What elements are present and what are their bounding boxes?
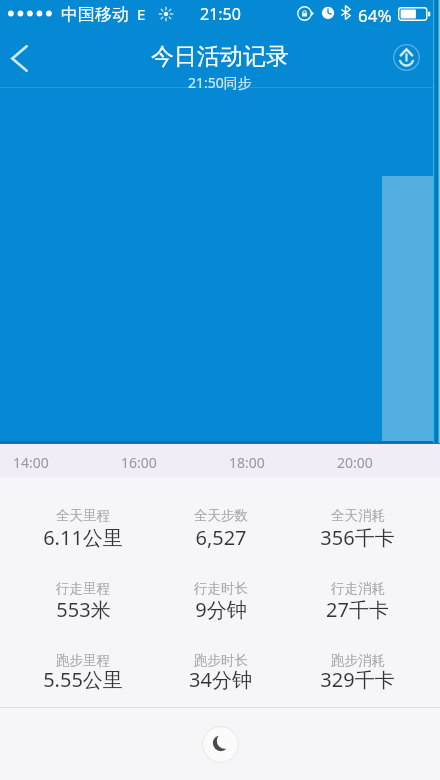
staticText: 今日活动记录 <box>151 42 289 71</box>
staticText: 16:00 <box>121 453 157 472</box>
staticText: E <box>137 4 146 24</box>
staticText: 全天步数 <box>194 507 248 524</box>
staticText: 行走时长 <box>194 580 248 597</box>
staticText: 6.11公里 <box>43 524 123 551</box>
staticText: 21:50同步 <box>188 73 252 92</box>
staticText: 64% <box>358 4 392 27</box>
button[interactable]: 329千卡 <box>289 666 426 693</box>
staticText: 跑步消耗 <box>331 652 385 669</box>
button[interactable]: 全天消耗 <box>289 507 426 524</box>
staticText: 跑步里程 <box>56 652 110 669</box>
staticText: 21:50 <box>200 3 241 25</box>
button[interactable]: Back <box>0 28 46 88</box>
staticText: 14:00 <box>13 453 49 472</box>
staticText: 553米 <box>56 596 111 623</box>
button[interactable]: 34分钟 <box>152 666 289 693</box>
staticText: 329千卡 <box>320 666 395 693</box>
button[interactable]: 行走消耗 <box>289 580 426 597</box>
button[interactable]: 行走里程 <box>14 580 152 597</box>
button[interactable]: 跑步消耗 <box>289 652 426 669</box>
button[interactable]: 553米 <box>14 596 152 623</box>
staticText: 行走里程 <box>56 580 110 597</box>
button[interactable]: 27千卡 <box>289 596 426 623</box>
button[interactable]: 全天里程 <box>14 507 152 524</box>
staticText: 全天消耗 <box>331 507 385 524</box>
staticText: 6,527 <box>195 524 247 551</box>
button[interactable]: 5.55公里 <box>14 666 152 693</box>
staticText: 全天里程 <box>56 507 110 524</box>
staticText: 356千卡 <box>320 524 395 551</box>
button[interactable]: 全天步数 <box>152 507 289 524</box>
button[interactable]: Upload <box>384 35 428 79</box>
button[interactable]: 9分钟 <box>152 596 289 623</box>
button[interactable]: 6,527 <box>152 524 289 551</box>
staticText: 跑步时长 <box>194 652 248 669</box>
staticText: 行走消耗 <box>331 580 385 597</box>
staticText: 18:00 <box>229 453 265 472</box>
staticText: 中国移动 <box>61 4 129 25</box>
staticText: 34分钟 <box>189 666 252 693</box>
staticText: 20:00 <box>337 453 373 472</box>
staticText: 5.55公里 <box>43 666 123 693</box>
button[interactable]: 行走时长 <box>152 580 289 597</box>
button[interactable]: Sleep mode <box>202 726 239 763</box>
button[interactable]: 6.11公里 <box>14 524 152 551</box>
button[interactable]: 跑步时长 <box>152 652 289 669</box>
staticText: 27千卡 <box>326 596 389 623</box>
staticText: 9分钟 <box>195 596 247 623</box>
button[interactable]: 跑步里程 <box>14 652 152 669</box>
button[interactable]: 356千卡 <box>289 524 426 551</box>
